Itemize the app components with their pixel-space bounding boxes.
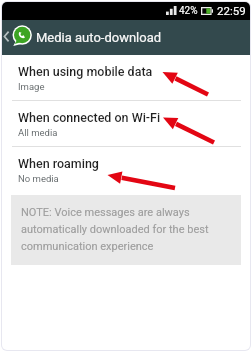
staticText: Media auto-download [36,30,162,45]
staticText: When roaming [18,156,99,171]
staticText: Image [18,81,45,92]
staticText: 22:59 [217,4,246,17]
staticText: 42% [179,5,198,17]
button[interactable]: When roaming [2,147,250,192]
button[interactable]: Back [2,20,13,55]
staticText: All media [18,127,58,138]
button[interactable]: When using mobile data [2,55,250,100]
staticText: When using mobile data [18,64,153,79]
staticText: NOTE: Voice messages are always automati… [21,203,221,254]
button[interactable]: When connected on Wi-Fi [2,101,250,146]
staticText: No media [18,173,59,184]
staticText: When connected on Wi-Fi [18,110,161,125]
